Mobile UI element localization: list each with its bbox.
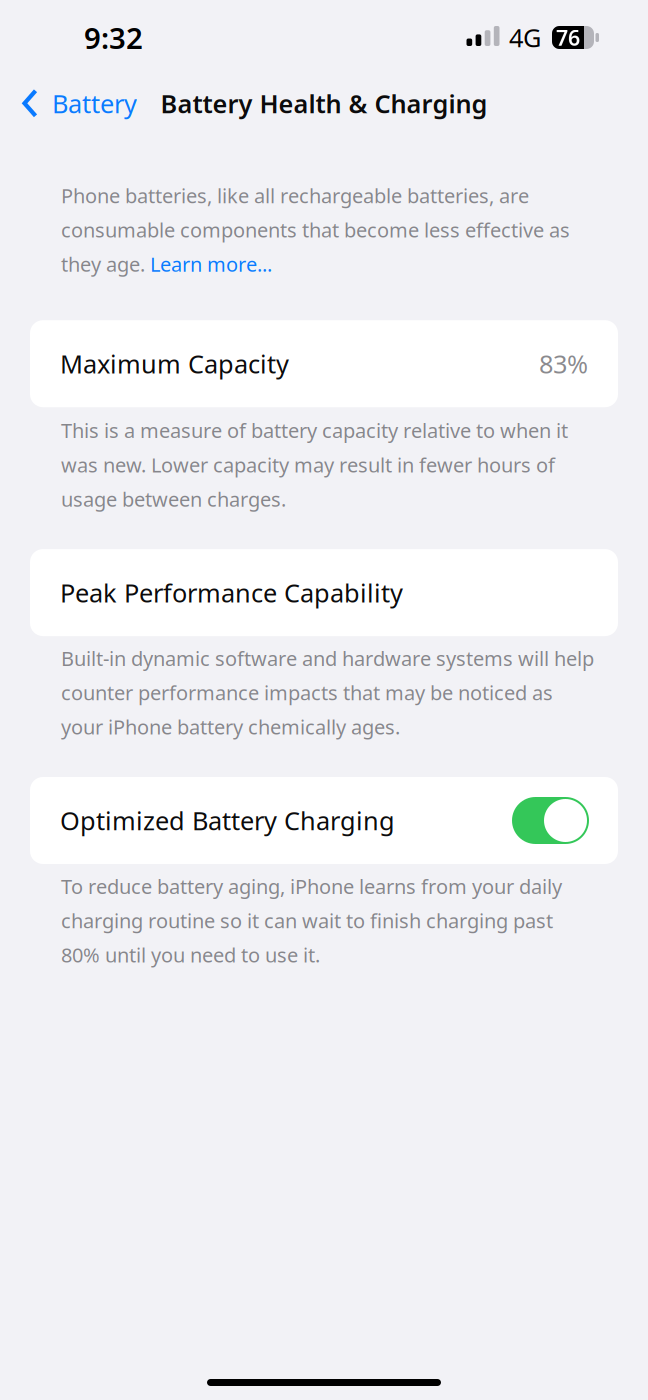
staticText: Peak Performance Capability	[60, 576, 403, 609]
staticText: This is a measure of battery capacity re…	[61, 417, 568, 444]
button[interactable]: Maximum Capacity	[30, 320, 618, 407]
staticText: Maximum Capacity	[60, 347, 289, 380]
button[interactable]: Peak Performance Capability	[30, 549, 618, 636]
staticText: Battery Health & Charging	[160, 86, 487, 120]
staticText: Phone batteries, like all rechargeable b…	[61, 182, 529, 209]
button[interactable]: Battery	[0, 72, 180, 134]
button[interactable]: Learn more...	[150, 251, 272, 277]
staticText: Learn more...	[150, 251, 272, 277]
staticText: counter performance impacts that may be …	[61, 679, 553, 706]
staticText: 9:32	[84, 18, 143, 57]
staticText: Built-in dynamic software and hardware s…	[61, 645, 594, 672]
staticText: 80% until you need to use it.	[61, 941, 320, 968]
staticText: 4G	[509, 21, 541, 54]
staticText: Optimized Battery Charging	[60, 804, 395, 837]
staticText: To reduce battery aging, iPhone learns f…	[61, 873, 562, 899]
button[interactable]: Optimized Battery Charging	[30, 777, 618, 864]
staticText: they age.	[61, 251, 150, 277]
staticText: usage between charges.	[61, 486, 286, 512]
staticText: was new. Lower capacity may result in fe…	[61, 451, 555, 478]
staticText: consumable components that become less e…	[61, 216, 570, 243]
staticText: charging routine so it can wait to finis…	[61, 907, 553, 934]
staticText: 83%	[539, 347, 588, 380]
staticText: Battery	[52, 86, 137, 120]
staticText: your iPhone battery chemically ages.	[61, 714, 400, 740]
staticText: 76	[556, 23, 580, 52]
